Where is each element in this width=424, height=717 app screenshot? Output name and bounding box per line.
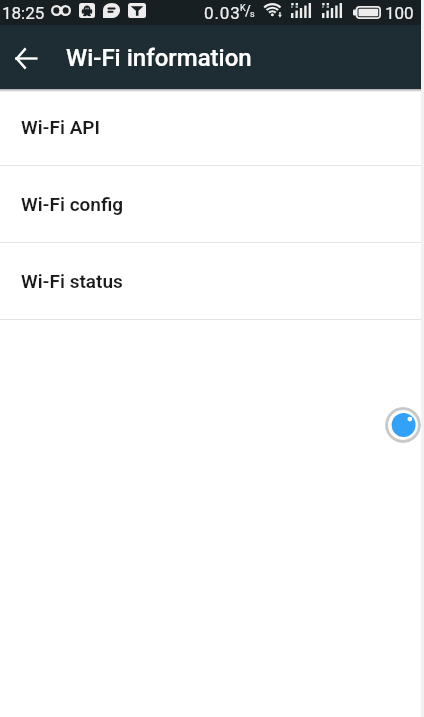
button[interactable]: Wi-Fi config <box>0 166 421 243</box>
staticText: Wi-Fi status <box>21 270 123 292</box>
staticText: Wi-Fi config <box>21 193 124 215</box>
staticText: Wi-Fi API <box>21 116 101 138</box>
staticText: / <box>245 3 251 19</box>
staticText: 18:25 <box>2 3 45 23</box>
staticText: 0.03 <box>204 3 241 23</box>
staticText: 100 <box>385 3 414 23</box>
button[interactable]: Wi-Fi API <box>0 89 421 166</box>
staticText: Wi-Fi information <box>66 44 252 72</box>
button[interactable]: Wi-Fi status <box>0 243 421 320</box>
staticText: K <box>240 3 246 14</box>
button[interactable]: Assistive touch <box>385 407 421 443</box>
staticText: s <box>250 9 255 20</box>
button[interactable]: Back <box>0 25 52 89</box>
